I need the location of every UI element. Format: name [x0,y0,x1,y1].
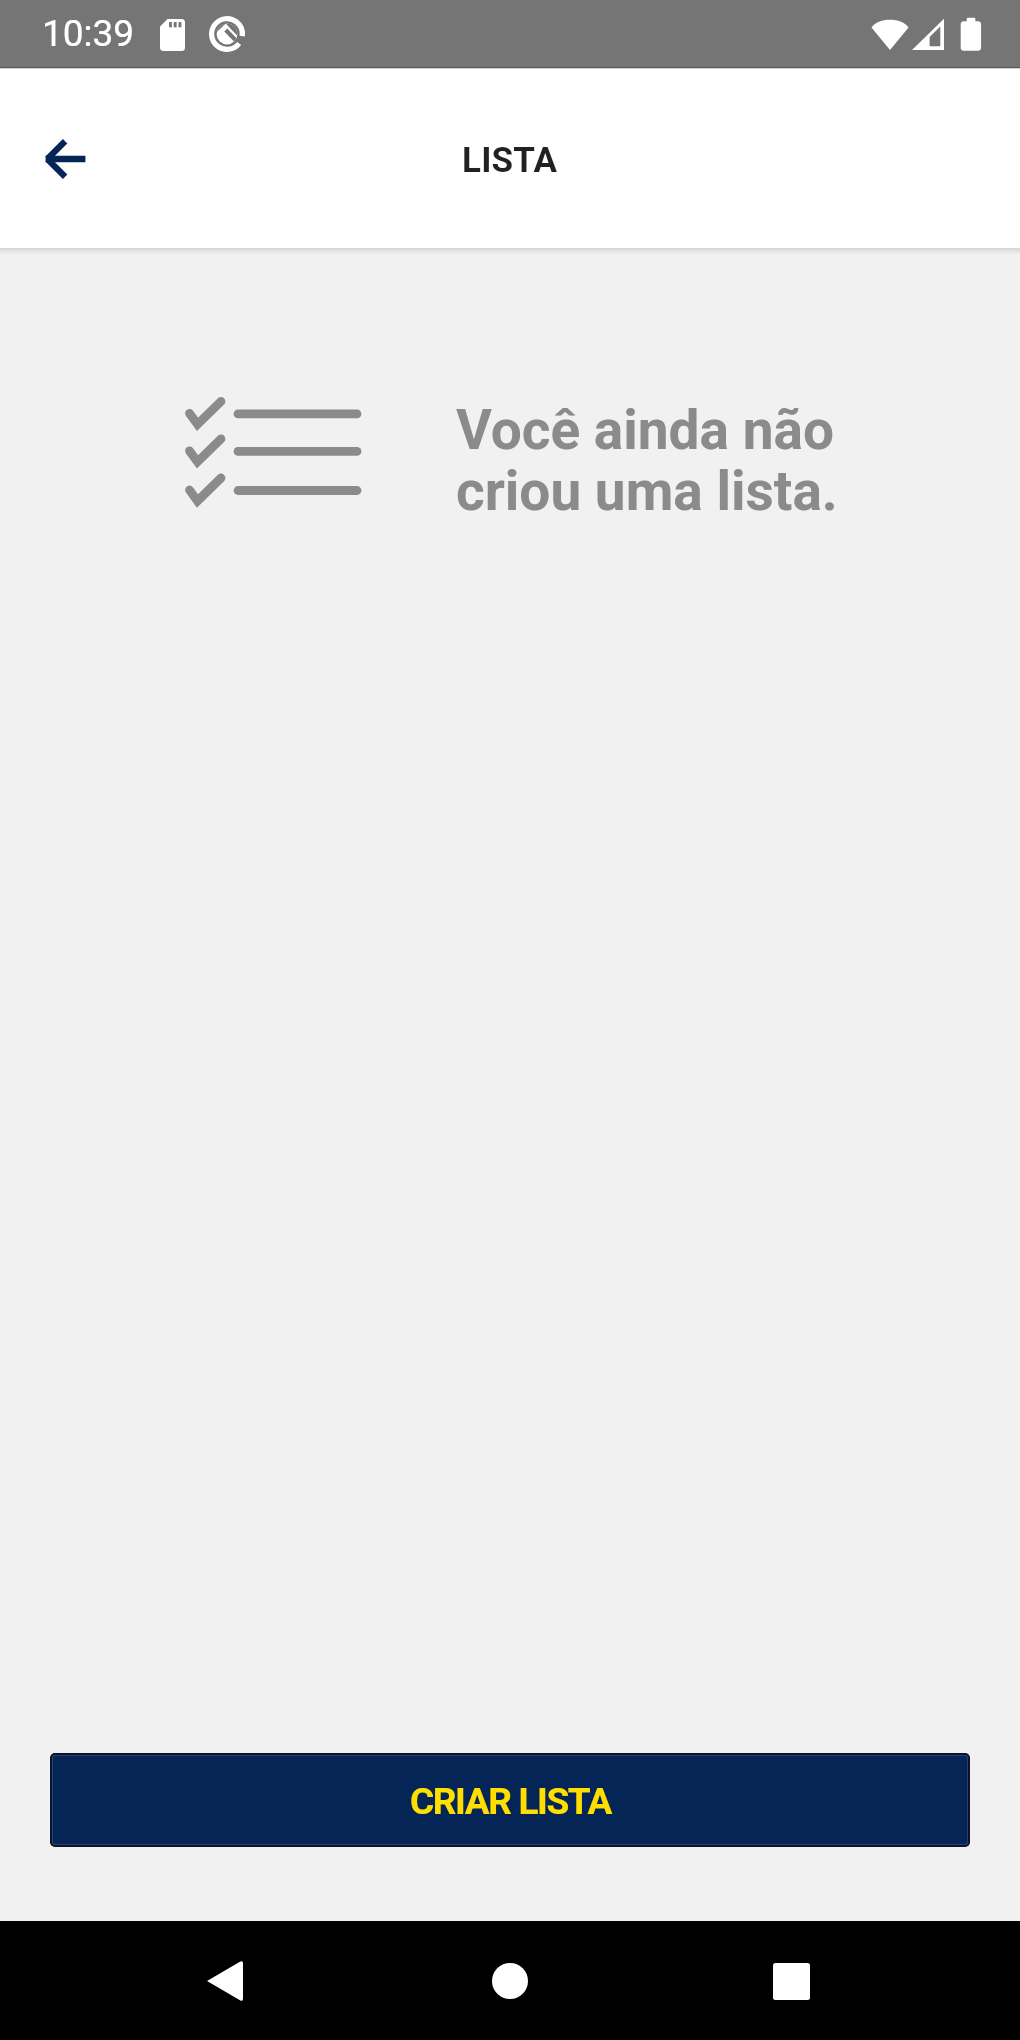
staticText: CRIAR LISTA [410,1780,611,1823]
button[interactable]: Back [145,1922,305,2039]
button[interactable]: Back [17,110,113,206]
staticText: 10:39 [42,12,135,55]
staticText: LISTA [462,140,558,181]
button[interactable]: Home [430,1922,590,2039]
button[interactable]: Recent apps [712,1922,872,2039]
staticText: Você ainda não criou uma lista. [456,398,838,523]
button[interactable]: CRIAR LISTA [50,1753,970,1847]
